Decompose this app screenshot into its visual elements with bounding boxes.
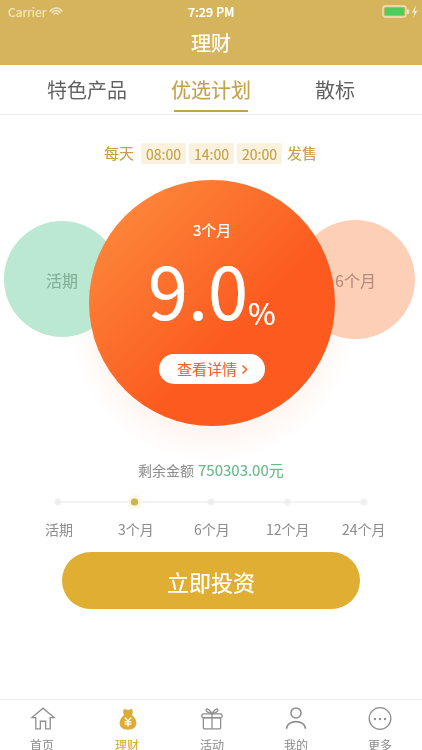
staticText: 9.0 (148, 236, 248, 340)
staticText: 20:00 (242, 144, 277, 164)
button[interactable]: 立即投资 (62, 552, 360, 609)
staticText: 12个月 (266, 519, 310, 539)
other: Mine (284, 707, 308, 730)
other: Activity (200, 707, 224, 730)
staticText: 更多 (368, 736, 393, 750)
button[interactable]: Finance (85, 707, 170, 750)
staticText: 活期 (45, 519, 73, 539)
staticText: 活动 (200, 736, 225, 750)
button[interactable]: Home (0, 707, 85, 750)
button[interactable]: 散标 (273, 65, 397, 115)
button[interactable]: 活期 (4, 221, 120, 337)
button[interactable]: 查看详情 (159, 354, 265, 384)
button[interactable]: 6个月 (296, 220, 415, 339)
staticText: 活期 (46, 268, 79, 291)
staticText: 首页 (30, 736, 55, 750)
staticText: 3个月 (193, 219, 232, 241)
staticText: 优选计划 (171, 75, 251, 104)
button[interactable]: 活期 (20, 519, 97, 539)
other: More (368, 707, 392, 730)
staticText: 6个月 (335, 268, 376, 291)
button[interactable]: More (338, 707, 422, 750)
other: Finance (116, 707, 140, 730)
button[interactable]: 3个月 (89, 180, 335, 426)
button[interactable]: 24个月 (326, 519, 402, 539)
staticText: 散标 (315, 75, 355, 104)
staticText: 3个月 (118, 519, 154, 539)
staticText: Carrier (8, 3, 47, 20)
staticText: 理财 (115, 736, 140, 750)
staticText: 08:00 (146, 144, 181, 164)
button[interactable]: 12个月 (250, 519, 326, 539)
staticText: 查看详情 (177, 358, 238, 380)
staticText: % (248, 290, 276, 333)
staticText: 我的 (284, 736, 309, 750)
staticText: 特色产品 (47, 75, 127, 104)
staticText: 每天 (104, 142, 135, 164)
button[interactable]: 6个月 (174, 519, 250, 539)
button[interactable]: Mine (254, 707, 338, 750)
staticText: 24个月 (342, 519, 386, 539)
staticText: 剩余金额 (138, 460, 198, 480)
other: Home (31, 707, 55, 730)
staticText: 14:00 (194, 144, 229, 164)
staticText: 理财 (191, 28, 231, 57)
staticText: 立即投资 (167, 565, 256, 597)
button[interactable]: 优选计划 (149, 65, 273, 115)
button[interactable]: 特色产品 (25, 65, 149, 115)
button[interactable]: 3个月 (97, 519, 174, 539)
staticText: 7:29 PM (188, 2, 235, 20)
staticText: 发售 (287, 142, 318, 164)
button[interactable]: Activity (170, 707, 254, 750)
staticText: 750303.00元 (198, 459, 284, 481)
staticText: 6个月 (194, 519, 230, 539)
